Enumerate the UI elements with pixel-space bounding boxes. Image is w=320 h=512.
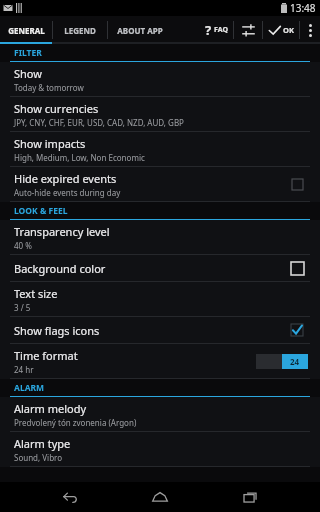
staticText: Alarm type [14, 436, 71, 451]
staticText: Show flags icons [14, 323, 100, 338]
staticText: 24 hr [14, 364, 34, 375]
staticText: High, Medium, Low, Non Economic [14, 152, 145, 163]
button[interactable]: Settings filters [234, 16, 262, 44]
button[interactable]: Time format [0, 344, 320, 379]
button[interactable]: LEGEND [53, 16, 107, 44]
staticText: JPY, CNY, CHF, EUR, USD, CAD, NZD, AUD, … [14, 117, 184, 128]
button[interactable]: Transparency level [0, 220, 320, 255]
staticText: Auto-hide events during day [14, 187, 121, 198]
button[interactable]: OK [263, 16, 299, 44]
staticText: Alarm melody [14, 401, 87, 416]
staticText: FILTER [14, 47, 42, 59]
button[interactable]: Show currencies [0, 97, 320, 132]
staticText: Show impacts [14, 136, 86, 151]
staticText: Time format [14, 348, 78, 363]
staticText: 3 / 5 [14, 302, 31, 313]
staticText: Background color [14, 261, 106, 276]
staticText: 24 [290, 356, 300, 367]
staticText: Hide expired events [14, 171, 117, 186]
button[interactable]: Show [0, 62, 320, 97]
button[interactable]: Recent apps [229, 482, 273, 512]
staticText: Show currencies [14, 101, 99, 116]
staticText: ALARM [14, 382, 45, 394]
staticText: 40 % [14, 240, 32, 251]
staticText: ? [205, 21, 212, 39]
button[interactable]: Home [138, 482, 182, 512]
staticText: ABOUT APP [117, 25, 163, 36]
button[interactable]: Alarm type [0, 432, 320, 467]
button[interactable]: Show flags icons checkbox [286, 319, 308, 341]
button[interactable]: Time format toggle [256, 354, 308, 369]
staticText: Predvolený tón zvonenia (Argon) [14, 417, 137, 428]
button[interactable]: Background color [0, 255, 320, 282]
button[interactable]: Show impacts [0, 132, 320, 167]
button[interactable]: GENERAL [0, 16, 52, 44]
staticText: 13:48 [290, 1, 316, 15]
button[interactable]: ABOUT APP [108, 16, 172, 44]
staticText: Sound, Vibro [14, 452, 63, 463]
staticText: LOOK & FEEL [14, 205, 68, 217]
button[interactable]: More options [300, 16, 320, 44]
staticText: Transparency level [14, 224, 110, 239]
button[interactable]: Text size [0, 282, 320, 317]
staticText: Today & tomorrow [14, 82, 84, 93]
button[interactable]: Show flags icons [0, 317, 320, 344]
button[interactable]: ? [200, 16, 233, 44]
button[interactable]: Background color swatch [286, 257, 308, 279]
button[interactable]: Back [47, 482, 91, 512]
staticText: Text size [14, 286, 58, 301]
button[interactable]: Hide expired events checkbox [286, 173, 308, 195]
staticText: GENERAL [8, 25, 45, 36]
button[interactable]: Hide expired events [0, 167, 320, 202]
button[interactable]: Alarm melody [0, 397, 320, 432]
staticText: OK [283, 25, 294, 35]
staticText: LEGEND [64, 25, 96, 36]
staticText: FAQ [214, 25, 228, 35]
staticText: Show [14, 66, 42, 81]
